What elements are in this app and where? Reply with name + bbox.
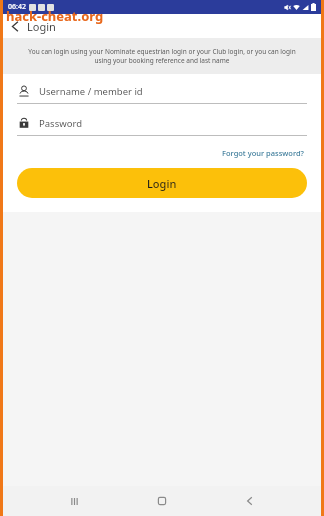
button[interactable]: Username / member id: [17, 84, 307, 104]
button[interactable]: Login: [17, 168, 307, 198]
staticText: Login: [147, 176, 177, 191]
button[interactable]: Forgot your password?: [219, 146, 307, 160]
staticText: Password: [39, 117, 82, 130]
button[interactable]: Recents: [57, 486, 91, 516]
staticText: hack-cheat.org: [6, 7, 104, 25]
button[interactable]: Back: [233, 486, 267, 516]
staticText: You can login using your Nominate equest…: [21, 47, 303, 65]
button[interactable]: Home: [145, 486, 179, 516]
staticText: Forgot your password?: [222, 148, 304, 158]
staticText: 06:42: [8, 2, 26, 12]
staticText: Username / member id: [39, 85, 143, 98]
staticText: Login: [27, 19, 56, 34]
button[interactable]: Back: [3, 14, 27, 38]
button[interactable]: Password: [17, 116, 307, 136]
